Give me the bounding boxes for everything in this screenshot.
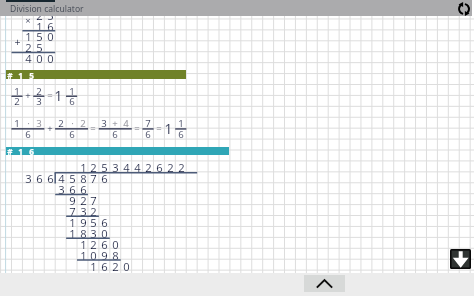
staticText: 6 xyxy=(80,182,87,197)
staticText: 6 xyxy=(101,259,108,274)
staticText: 1 xyxy=(80,237,87,252)
staticText: 2 xyxy=(112,259,119,274)
staticText: 2 xyxy=(36,85,42,98)
staticText: 2 xyxy=(90,237,97,252)
staticText: 3 xyxy=(112,160,119,175)
staticText: 6 xyxy=(101,171,108,186)
staticText: + xyxy=(25,89,31,102)
staticText: 5 xyxy=(47,8,54,23)
staticText: 2 xyxy=(90,160,97,175)
staticText: 6 xyxy=(29,146,34,157)
staticText: 1 xyxy=(54,85,63,105)
staticText: 3 xyxy=(58,182,65,197)
staticText: 9 xyxy=(69,193,76,208)
staticText: 6 xyxy=(69,182,76,197)
staticText: = xyxy=(90,122,96,135)
staticText: 5 xyxy=(29,70,34,81)
staticText: 0 xyxy=(123,259,130,274)
staticText: 1 xyxy=(25,29,32,44)
staticText: 5 xyxy=(36,29,43,44)
staticText: = xyxy=(134,122,140,135)
staticText: 5 xyxy=(90,215,97,230)
staticText: 6 xyxy=(101,215,108,230)
staticText: 6 xyxy=(47,171,54,186)
staticText: 7 xyxy=(90,193,97,208)
staticText: 5 xyxy=(36,40,43,55)
staticText: 3 xyxy=(36,117,42,130)
staticText: × xyxy=(25,14,31,27)
staticText: 2 xyxy=(25,40,32,55)
staticText: 6 xyxy=(145,128,151,141)
staticText: 2 xyxy=(90,204,97,219)
staticText: Division calculator xyxy=(10,3,84,15)
staticText: 6 xyxy=(178,128,184,141)
staticText: 1 xyxy=(164,118,173,138)
staticText: 2 xyxy=(178,160,185,175)
staticText: 6 xyxy=(112,128,118,141)
staticText: 2 xyxy=(80,193,87,208)
staticText: = xyxy=(156,122,162,135)
staticText: # xyxy=(7,70,13,81)
staticText: 0 xyxy=(47,51,54,66)
staticText: 9 xyxy=(80,215,87,230)
staticText: 1 xyxy=(80,160,87,175)
staticText: 1 xyxy=(178,117,184,130)
staticText: 1 xyxy=(14,85,20,98)
staticText: + xyxy=(47,122,53,135)
staticText: 3 xyxy=(36,95,42,108)
staticText: + xyxy=(14,35,21,49)
button[interactable] xyxy=(6,147,229,155)
staticText: 8 xyxy=(80,171,87,186)
staticText: · xyxy=(27,117,30,130)
staticText: 2 xyxy=(145,160,152,175)
staticText: 6 xyxy=(36,171,43,186)
staticText: 6 xyxy=(47,19,54,34)
staticText: 7 xyxy=(69,204,76,219)
button[interactable]: Refresh xyxy=(456,1,472,17)
staticText: 2 xyxy=(14,95,20,108)
staticText: 4 xyxy=(58,171,65,186)
staticText: = xyxy=(47,89,53,102)
staticText: 1 xyxy=(69,85,75,98)
staticText: 0 xyxy=(112,237,119,252)
staticText: # xyxy=(7,146,13,157)
staticText: 2 xyxy=(58,117,64,130)
staticText: 5 xyxy=(101,160,108,175)
button[interactable] xyxy=(6,70,186,79)
staticText: 7 xyxy=(90,171,97,186)
staticText: 0 xyxy=(101,226,108,241)
staticText: 6 xyxy=(101,237,108,252)
staticText: 6 xyxy=(156,160,163,175)
staticText: 3 xyxy=(90,226,97,241)
staticText: 3 xyxy=(25,171,32,186)
staticText: 5 xyxy=(69,171,76,186)
staticText: 6 xyxy=(25,128,31,141)
staticText: 3 xyxy=(80,204,87,219)
staticText: 4 xyxy=(123,160,130,175)
staticText: 1 xyxy=(80,248,87,263)
button[interactable]: Jump to bottom xyxy=(450,249,471,269)
staticText: 6 xyxy=(69,95,75,108)
staticText: 0 xyxy=(36,51,43,66)
staticText: 3 xyxy=(101,117,107,130)
staticText: 1 xyxy=(69,226,76,241)
staticText: 1 xyxy=(90,259,97,274)
staticText: 4 xyxy=(25,51,32,66)
staticText: 2 xyxy=(167,160,174,175)
staticText: 1 xyxy=(14,117,20,130)
staticText: 1 xyxy=(18,146,23,157)
staticText: 4 xyxy=(123,117,129,130)
staticText: 8 xyxy=(80,226,87,241)
staticText: 1 xyxy=(18,70,23,81)
staticText: 2 xyxy=(80,117,86,130)
button[interactable]: Collapse keypad xyxy=(304,275,345,292)
staticText: · xyxy=(71,117,74,130)
staticText: 2 xyxy=(36,8,43,23)
staticText: 4 xyxy=(134,160,141,175)
staticText: 0 xyxy=(47,29,54,44)
staticText: 6 xyxy=(69,128,75,141)
staticText: + xyxy=(112,117,118,130)
staticText: 8 xyxy=(112,248,119,263)
staticText: 1 xyxy=(36,19,43,34)
staticText: 9 xyxy=(101,248,108,263)
